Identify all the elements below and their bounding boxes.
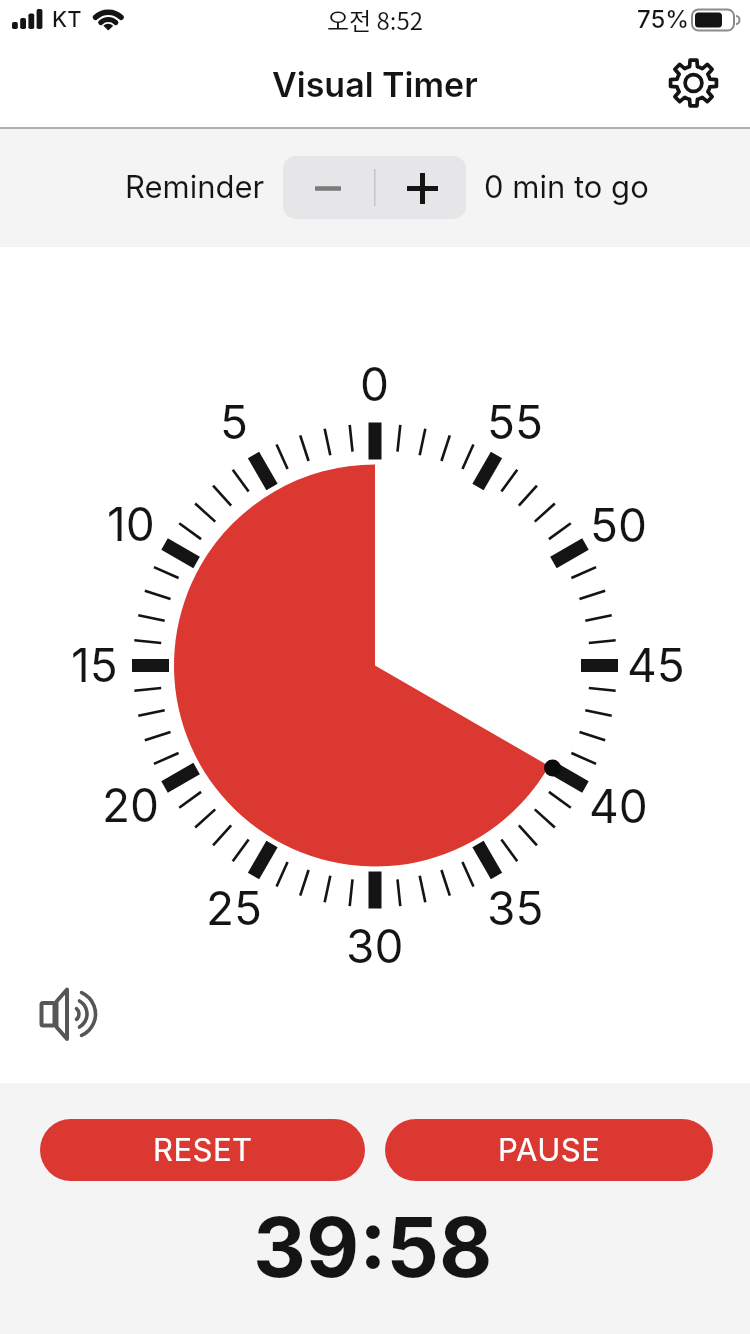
staticText: 30 — [346, 918, 404, 974]
staticText: 25 — [206, 880, 263, 936]
staticText: 45 — [627, 637, 685, 693]
staticText: 오전 8:52 — [327, 2, 424, 34]
staticText: 75% — [637, 5, 690, 34]
staticText: Visual Timer — [272, 64, 478, 105]
button[interactable]: PAUSE — [385, 1119, 713, 1181]
button[interactable]: RESET — [40, 1119, 365, 1181]
button[interactable] — [283, 156, 374, 219]
staticText: 50 — [590, 497, 647, 553]
button[interactable] — [375, 156, 466, 219]
button[interactable] — [665, 56, 721, 112]
staticText: 35 — [487, 880, 544, 936]
staticText: RESET — [153, 1131, 253, 1169]
staticText: 5 — [220, 394, 248, 450]
staticText: 20 — [102, 777, 160, 833]
staticText: Reminder — [125, 168, 265, 206]
button[interactable] — [34, 984, 104, 1044]
staticText: KT — [52, 6, 82, 33]
staticText: 55 — [487, 394, 543, 450]
staticText: 0 — [360, 356, 390, 412]
staticText: 10 — [107, 496, 155, 552]
staticText: 15 — [71, 637, 118, 693]
staticText: PAUSE — [498, 1131, 601, 1169]
staticText: 39:58 — [253, 1198, 493, 1297]
staticText: 40 — [589, 778, 648, 834]
staticText: 0 min to go — [484, 168, 649, 206]
